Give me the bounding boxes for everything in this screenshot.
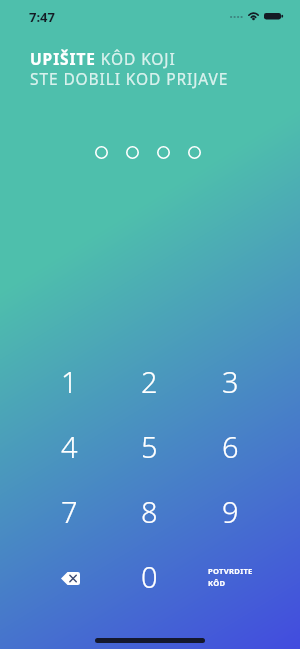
staticText: 8 bbox=[141, 492, 158, 531]
staticText: 6 bbox=[222, 427, 239, 466]
button[interactable]: 2 bbox=[109, 349, 190, 414]
staticText: 3 bbox=[222, 362, 239, 401]
button[interactable]: Backspace bbox=[29, 544, 109, 609]
staticText: POTVRDITE KÔD bbox=[208, 566, 253, 589]
staticText: 5 bbox=[141, 427, 158, 466]
staticText: 7 bbox=[61, 492, 78, 531]
button[interactable]: 6 bbox=[190, 414, 271, 479]
button[interactable]: 1 bbox=[29, 349, 109, 414]
staticText: 2 bbox=[141, 362, 158, 401]
button[interactable]: 5 bbox=[109, 414, 190, 479]
staticText: 9 bbox=[222, 492, 239, 531]
button[interactable]: 3 bbox=[190, 349, 271, 414]
staticText: 0 bbox=[141, 557, 158, 596]
button[interactable]: 0 bbox=[109, 544, 190, 609]
staticText: 4 bbox=[61, 427, 78, 466]
staticText: 1 bbox=[61, 362, 78, 401]
button[interactable]: 9 bbox=[190, 479, 271, 544]
staticText: 7:47 bbox=[29, 8, 55, 26]
button[interactable]: POTVRDITE KÔD bbox=[190, 544, 271, 609]
button[interactable]: 4 bbox=[29, 414, 109, 479]
staticText: STE DOBILI KOD PRIJAVE bbox=[30, 68, 229, 89]
button[interactable]: 8 bbox=[109, 479, 190, 544]
button[interactable]: 7 bbox=[29, 479, 109, 544]
staticText: UPIŠITE KÔD KOJI bbox=[30, 48, 176, 69]
